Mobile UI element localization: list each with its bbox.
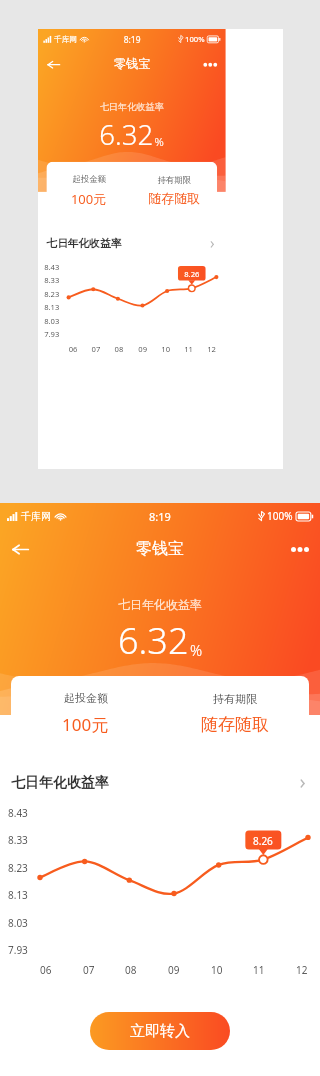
staticText: 8.03 — [44, 315, 59, 326]
staticText: 随存随取 — [148, 191, 200, 207]
staticText: 零钱宝 — [136, 539, 184, 559]
staticText: 10 — [211, 963, 223, 977]
button[interactable]: More options — [280, 529, 320, 569]
staticText: 起投金额 — [72, 173, 106, 184]
staticText: 08 — [125, 963, 137, 977]
staticText: 8.13 — [8, 888, 28, 902]
button[interactable]: More options — [195, 49, 226, 80]
staticText: 7.93 — [8, 943, 28, 957]
staticText: 6.32 — [118, 616, 189, 665]
staticText: 千库网 — [21, 510, 51, 523]
staticText: 11 — [184, 344, 193, 355]
staticText: 8.26 — [184, 269, 199, 279]
button[interactable]: 起投金额 — [46, 162, 217, 219]
staticText: 11 — [253, 963, 265, 977]
staticText: 7.93 — [44, 328, 59, 339]
staticText: 6.32 — [99, 116, 154, 153]
staticText: 08 — [115, 344, 124, 355]
staticText: 100元 — [71, 190, 107, 208]
staticText: 七日年化收益率 — [38, 101, 226, 113]
staticText: 09 — [168, 963, 180, 977]
staticText: 06 — [69, 344, 78, 355]
staticText: 七日年化收益率 — [46, 237, 121, 251]
staticText: 持有期限 — [213, 692, 257, 706]
staticText: % — [190, 640, 203, 660]
staticText: 07 — [83, 963, 95, 977]
button[interactable]: Back — [38, 49, 69, 80]
button[interactable]: 起投金额 — [11, 676, 309, 750]
staticText: 立即转入 — [130, 1022, 190, 1041]
staticText: 100% — [267, 509, 293, 523]
button[interactable]: 七日年化收益率 — [0, 768, 320, 798]
staticText: 12 — [207, 344, 216, 355]
staticText: 8:19 — [124, 34, 141, 45]
staticText: 零钱宝 — [114, 57, 151, 72]
staticText: 七日年化收益率 — [11, 774, 109, 792]
staticText: 07 — [92, 344, 101, 355]
staticText: 起投金额 — [64, 691, 108, 705]
staticText: 8.23 — [8, 861, 28, 875]
staticText: 8:19 — [149, 509, 171, 524]
staticText: 8.43 — [8, 806, 28, 820]
button[interactable]: Back — [0, 529, 40, 569]
staticText: % — [154, 134, 164, 150]
staticText: 8.03 — [8, 916, 28, 930]
staticText: 100% — [185, 34, 205, 44]
staticText: 七日年化收益率 — [0, 597, 320, 612]
staticText: 100元 — [62, 713, 109, 736]
staticText: 8.43 — [44, 262, 59, 272]
staticText: 8.13 — [44, 302, 59, 312]
staticText: 8.33 — [8, 833, 28, 847]
staticText: 10 — [161, 344, 170, 355]
staticText: 09 — [138, 344, 147, 355]
staticText: 持有期限 — [157, 174, 191, 185]
staticText: 8.33 — [44, 275, 59, 285]
staticText: 随存随取 — [201, 714, 269, 735]
staticText: 千库网 — [54, 34, 77, 44]
staticText: 8.23 — [44, 288, 59, 299]
button[interactable]: 七日年化收益率 — [38, 232, 226, 255]
staticText: 12 — [296, 963, 308, 977]
staticText: 8.26 — [253, 834, 273, 848]
button[interactable]: 立即转入 — [90, 1012, 230, 1050]
staticText: 06 — [40, 963, 52, 977]
